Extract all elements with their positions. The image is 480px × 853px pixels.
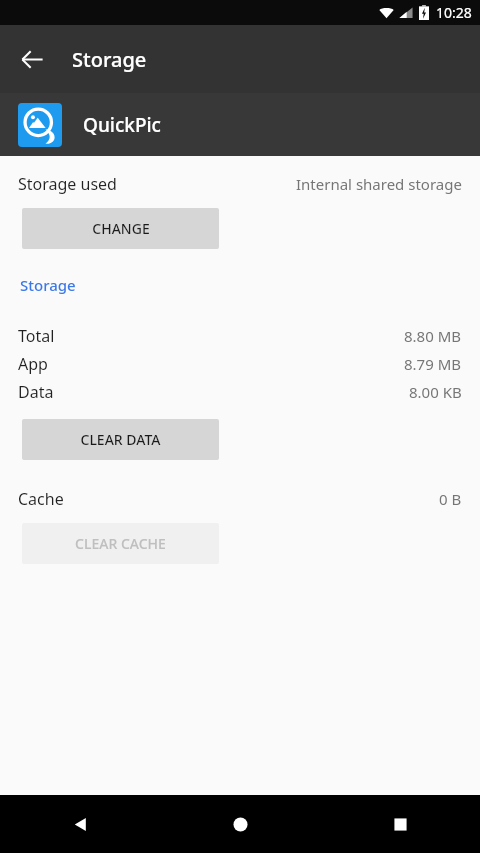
button[interactable]: Back — [8, 35, 56, 83]
staticText: App — [18, 353, 48, 375]
button[interactable]: QuickPic — [0, 93, 480, 156]
staticText: CLEAR CACHE — [75, 534, 166, 553]
button[interactable]: CHANGE — [22, 208, 219, 249]
button[interactable]: Back — [0, 795, 160, 853]
staticText: Data — [18, 381, 54, 403]
staticText: CHANGE — [92, 219, 150, 238]
staticText: CLEAR DATA — [80, 430, 161, 449]
staticText: Storage — [20, 275, 76, 295]
staticText: 0 B — [439, 489, 462, 509]
staticText: 8.79 MB — [404, 354, 462, 374]
staticText: 8.00 KB — [409, 382, 462, 402]
button[interactable]: CLEAR DATA — [22, 419, 219, 460]
staticText: 10:28 — [436, 3, 472, 22]
staticText: Internal shared storage — [296, 174, 462, 194]
staticText: Storage — [72, 46, 147, 73]
staticText: Total — [18, 325, 55, 347]
button[interactable]: Home — [160, 795, 320, 853]
staticText: QuickPic — [83, 112, 161, 138]
staticText: Cache — [18, 488, 64, 510]
staticText: 8.80 MB — [404, 326, 462, 346]
button[interactable]: CLEAR CACHE — [22, 523, 219, 564]
button[interactable]: Recent apps — [320, 795, 480, 853]
staticText: Storage used — [18, 173, 117, 195]
